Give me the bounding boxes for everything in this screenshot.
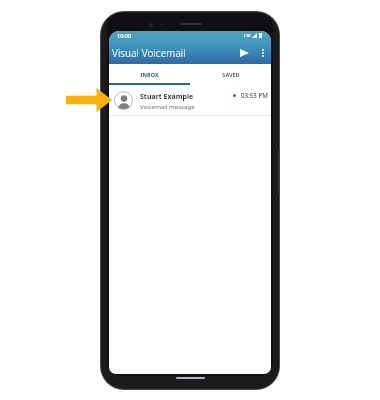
button[interactable]: INBOX [109, 63, 190, 85]
other: Pointer [66, 88, 112, 112]
staticText: LTE [244, 33, 251, 38]
button[interactable]: Stuart Example [109, 86, 271, 116]
staticText: INBOX [140, 71, 159, 78]
staticText: Visual Voicemail [112, 46, 186, 60]
button[interactable]: SAVED [190, 63, 271, 85]
staticText: Stuart Example [140, 92, 194, 102]
button[interactable]: More options [256, 46, 270, 60]
staticText: Voicemail message [140, 102, 195, 110]
staticText: 10:00 [117, 32, 132, 39]
button[interactable]: Play all [236, 45, 252, 61]
staticText: 03:53 PM [241, 91, 268, 99]
staticText: SAVED [222, 71, 240, 78]
